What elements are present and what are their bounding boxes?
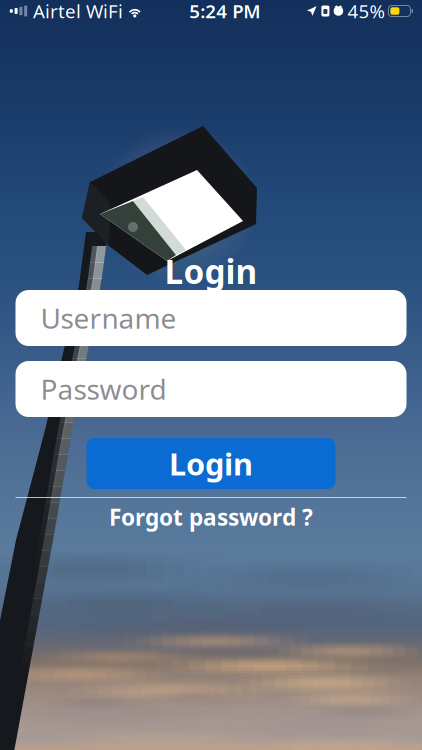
button[interactable]: Forgot password ? [109,505,313,529]
staticText: Login [169,443,253,484]
staticText: Username [40,299,176,337]
staticText: Forgot password ? [109,502,313,532]
button[interactable]: Login [86,438,335,489]
staticText: 5:24 PM [189,0,260,23]
staticText: 45% [347,0,385,23]
staticText: Login [164,249,257,293]
staticText: Airtel WiFi [33,0,123,23]
staticText: Password [40,370,166,408]
